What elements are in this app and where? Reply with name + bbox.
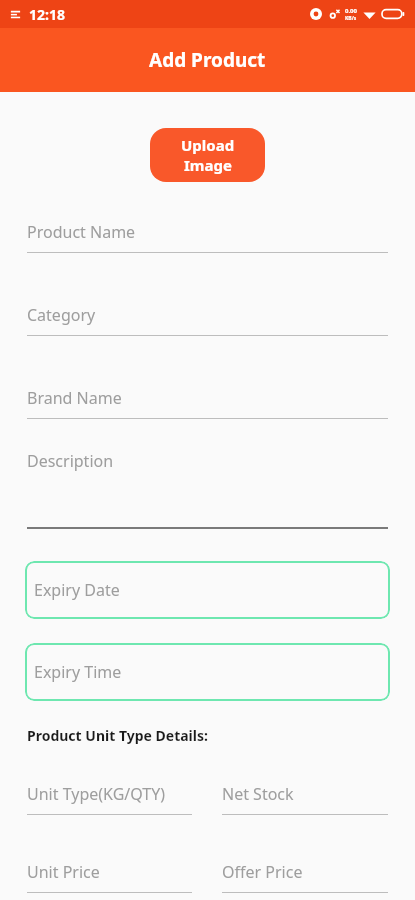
staticText: Unit Price [27, 861, 100, 883]
staticText: Product Unit Type Details: [27, 726, 208, 745]
button[interactable]: Brand Name [27, 387, 388, 419]
staticText: Category [27, 304, 96, 326]
button[interactable]: Unit Type(KG/QTY) [27, 783, 192, 815]
staticText: Brand Name [27, 387, 122, 409]
staticText: Offer Price [222, 861, 303, 883]
button[interactable]: Category [27, 304, 388, 336]
staticText: Description [27, 450, 114, 472]
staticText: Product Name [27, 221, 136, 243]
button[interactable]: Net Stock [222, 783, 388, 815]
button[interactable]: Product Name [27, 221, 388, 253]
staticText: KB/s [345, 15, 357, 22]
button[interactable]: Upload [150, 128, 265, 182]
button[interactable]: Offer Price [222, 861, 388, 893]
button[interactable]: Expiry Time [25, 643, 390, 701]
staticText: 0.00 [345, 7, 357, 15]
staticText: Expiry Time [34, 661, 122, 683]
staticText: Net Stock [222, 783, 294, 805]
staticText: Image [184, 155, 232, 175]
button[interactable]: Description [27, 443, 388, 529]
staticText: Add Product [149, 47, 266, 73]
staticText: Upload [181, 135, 235, 155]
button[interactable]: Unit Price [27, 861, 192, 893]
staticText: Expiry Date [34, 579, 120, 601]
staticText: Unit Type(KG/QTY) [27, 783, 166, 805]
button[interactable]: Expiry Date [25, 561, 390, 619]
staticText: 12:18 [29, 5, 65, 24]
